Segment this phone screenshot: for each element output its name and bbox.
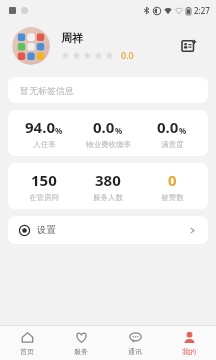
staticText: 0.0 [157,117,179,137]
staticText: % [115,125,123,136]
button[interactable]: 0.0 [76,117,140,149]
button[interactable]: 94.0 [12,117,76,149]
button[interactable]: 150 [12,170,76,202]
button[interactable]: 0 [140,170,204,202]
staticText: 首页 [20,347,34,356]
staticText: 2:27 [194,5,210,16]
staticText: 入住率 [33,140,56,149]
staticText: 被赞数 [161,193,184,202]
staticText: 物业费收缴率 [86,140,131,149]
button[interactable]: Add ID card [176,33,202,59]
button[interactable]: 通讯 [108,326,162,360]
button[interactable]: 服务 [54,326,108,360]
button[interactable] [12,27,50,65]
staticText: 94.0 [25,117,55,137]
button[interactable]: 设置 [8,216,208,244]
staticText: 服务 [74,347,88,356]
staticText: % [179,125,187,136]
button[interactable]: 0.0 [140,117,204,149]
staticText: 0.0 [93,117,115,137]
staticText: 满意度 [161,140,184,149]
staticText: 暂无标签信息 [20,85,74,96]
button[interactable]: 380 [76,170,140,202]
button[interactable]: 暂无标签信息 [8,77,208,103]
staticText: 服务人数 [93,193,123,202]
staticText: % [55,125,63,136]
staticText: 设置 [37,224,56,236]
staticText: 380 [95,170,121,190]
staticText: 0.0 [121,49,134,61]
staticText: 通讯 [128,347,142,356]
staticText: 0 [168,170,177,190]
button[interactable]: 我的 [162,326,216,360]
staticText: 在管房间 [29,193,59,202]
staticText: 周祥 [61,31,83,45]
button[interactable]: 首页 [0,326,54,360]
staticText: 150 [31,170,57,190]
staticText: 我的 [182,347,196,356]
